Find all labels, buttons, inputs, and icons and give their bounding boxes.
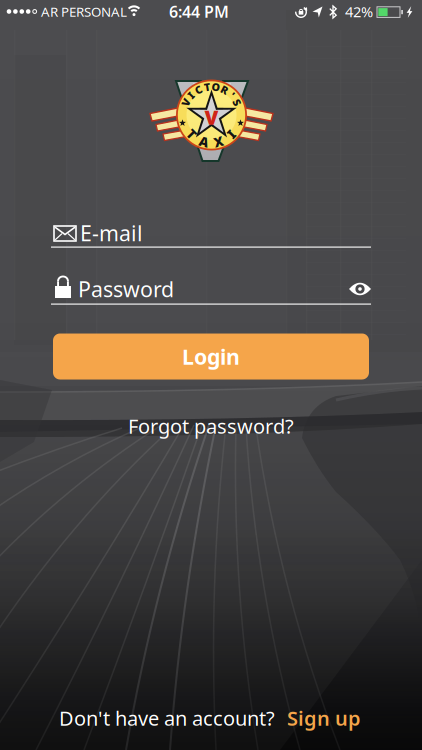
button[interactable]: E-mail xyxy=(51,215,373,257)
staticText: A xyxy=(199,133,209,150)
staticText: Don't have an account? xyxy=(59,705,275,731)
staticText: T xyxy=(188,125,196,143)
staticText: Forgot password? xyxy=(128,413,294,439)
staticText: S xyxy=(234,95,240,110)
staticText: I xyxy=(228,125,234,143)
staticText: Login xyxy=(182,342,240,371)
staticText: 6:44 PM xyxy=(169,1,229,22)
staticText: I xyxy=(189,88,194,102)
staticText: Sign up xyxy=(287,705,361,731)
staticText: 42% xyxy=(345,2,373,21)
button[interactable]: Password xyxy=(51,262,373,308)
button[interactable]: Show password xyxy=(343,276,377,302)
staticText: C xyxy=(195,83,202,97)
staticText: O xyxy=(211,80,220,94)
button[interactable]: Forgot password? xyxy=(61,409,361,443)
staticText: T xyxy=(204,80,210,94)
staticText: R xyxy=(221,83,228,97)
button[interactable]: Login xyxy=(53,333,369,379)
staticText: AR PERSONAL xyxy=(41,3,127,20)
staticText: Password xyxy=(78,275,174,303)
button[interactable]: Sign up xyxy=(287,705,361,731)
staticText: ' xyxy=(230,88,233,102)
staticText: X xyxy=(214,133,224,150)
staticText: E-mail xyxy=(80,219,143,247)
staticText: V xyxy=(204,104,218,130)
staticText: V xyxy=(182,95,189,110)
